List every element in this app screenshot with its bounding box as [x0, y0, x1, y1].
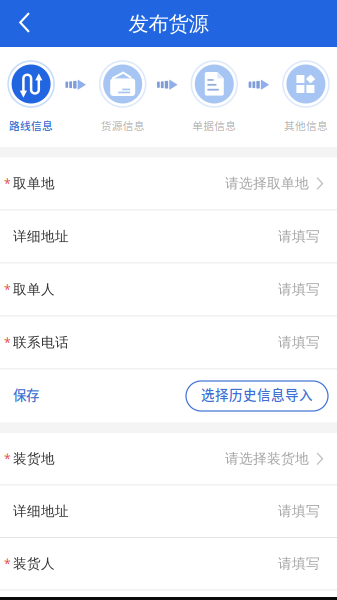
button[interactable]: *	[0, 263, 337, 316]
staticText: 请选择取单地	[225, 175, 309, 192]
staticText: 选择历史信息导入	[201, 384, 313, 404]
staticText: 路线信息	[9, 117, 53, 133]
button[interactable]: *	[0, 157, 337, 210]
staticText: 单据信息	[192, 117, 236, 133]
staticText: 请填写	[278, 281, 320, 298]
button[interactable]	[0, 210, 337, 263]
staticText: 其他信息	[284, 117, 328, 133]
button[interactable]: *	[0, 316, 337, 369]
staticText: 取单人	[13, 281, 55, 298]
staticText: 装货人	[13, 555, 55, 572]
staticText: 装货地	[13, 450, 55, 467]
staticText: 联系电话	[13, 334, 69, 351]
staticText: 详细地址	[13, 503, 69, 520]
button[interactable]: *	[0, 538, 337, 590]
staticText: 详细地址	[13, 228, 69, 245]
staticText: *	[4, 555, 11, 572]
staticText: 发布货源	[128, 11, 208, 37]
staticText: 请选择装货地	[225, 450, 309, 467]
staticText: 请填写	[278, 555, 320, 572]
button[interactable]: Back	[5, 1, 45, 45]
button[interactable]: 选择历史信息导入	[186, 381, 328, 411]
staticText: *	[4, 175, 11, 192]
staticText: 货源信息	[101, 117, 145, 133]
staticText: 取单地	[13, 175, 55, 192]
staticText: 请填写	[278, 334, 320, 351]
button[interactable]: 保存	[0, 374, 39, 418]
staticText: 请填写	[278, 503, 320, 520]
staticText: 请填写	[278, 228, 320, 245]
button[interactable]: *	[0, 433, 337, 485]
staticText: *	[4, 450, 11, 467]
staticText: 保存	[13, 385, 39, 404]
button[interactable]	[0, 485, 337, 538]
staticText: *	[4, 281, 11, 298]
staticText: *	[4, 334, 11, 351]
